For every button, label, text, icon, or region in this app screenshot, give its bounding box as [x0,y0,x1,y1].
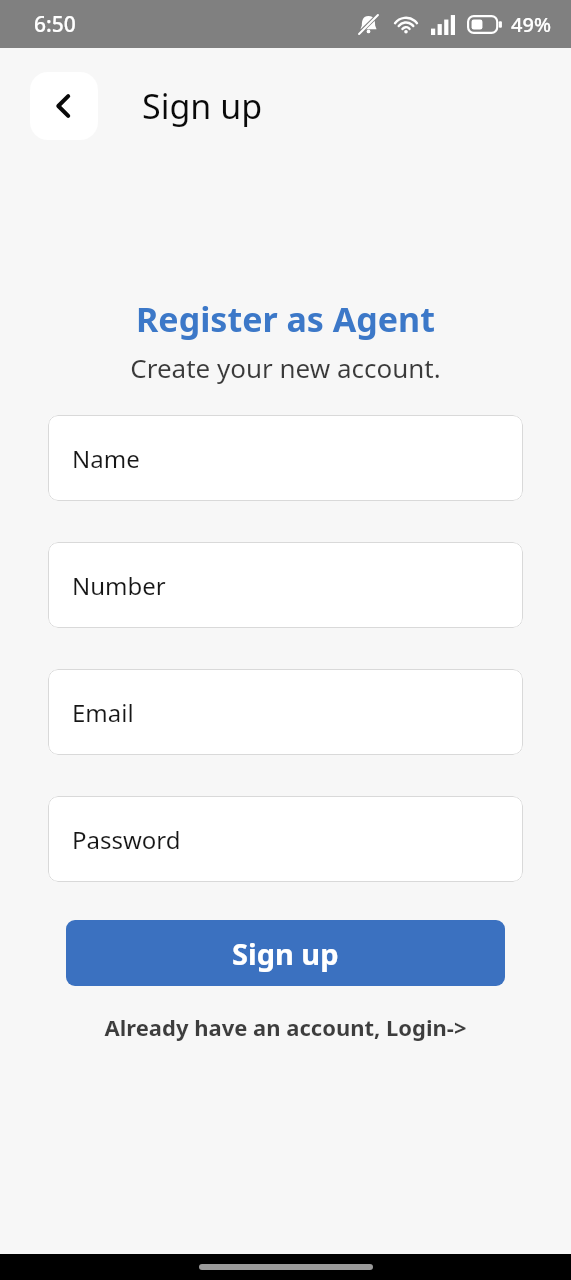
button[interactable]: Email [48,669,523,755]
staticText: 49% [511,11,551,38]
staticText: Email [72,696,134,729]
button[interactable]: Back [30,72,98,140]
button[interactable]: Already have an account, Login-> [0,1008,571,1046]
button[interactable]: Sign up [66,920,505,986]
staticText: Sign up [142,83,263,129]
staticText: Password [72,823,181,856]
button[interactable]: Password [48,796,523,882]
staticText: Create your new account. [0,350,571,385]
staticText: Name [72,442,140,475]
staticText: Register as Agent [0,296,571,342]
staticText: 6:50 [34,10,76,39]
staticText: Number [72,569,166,602]
button[interactable]: Name [48,415,523,501]
button[interactable]: Number [48,542,523,628]
staticText: Sign up [232,934,339,973]
